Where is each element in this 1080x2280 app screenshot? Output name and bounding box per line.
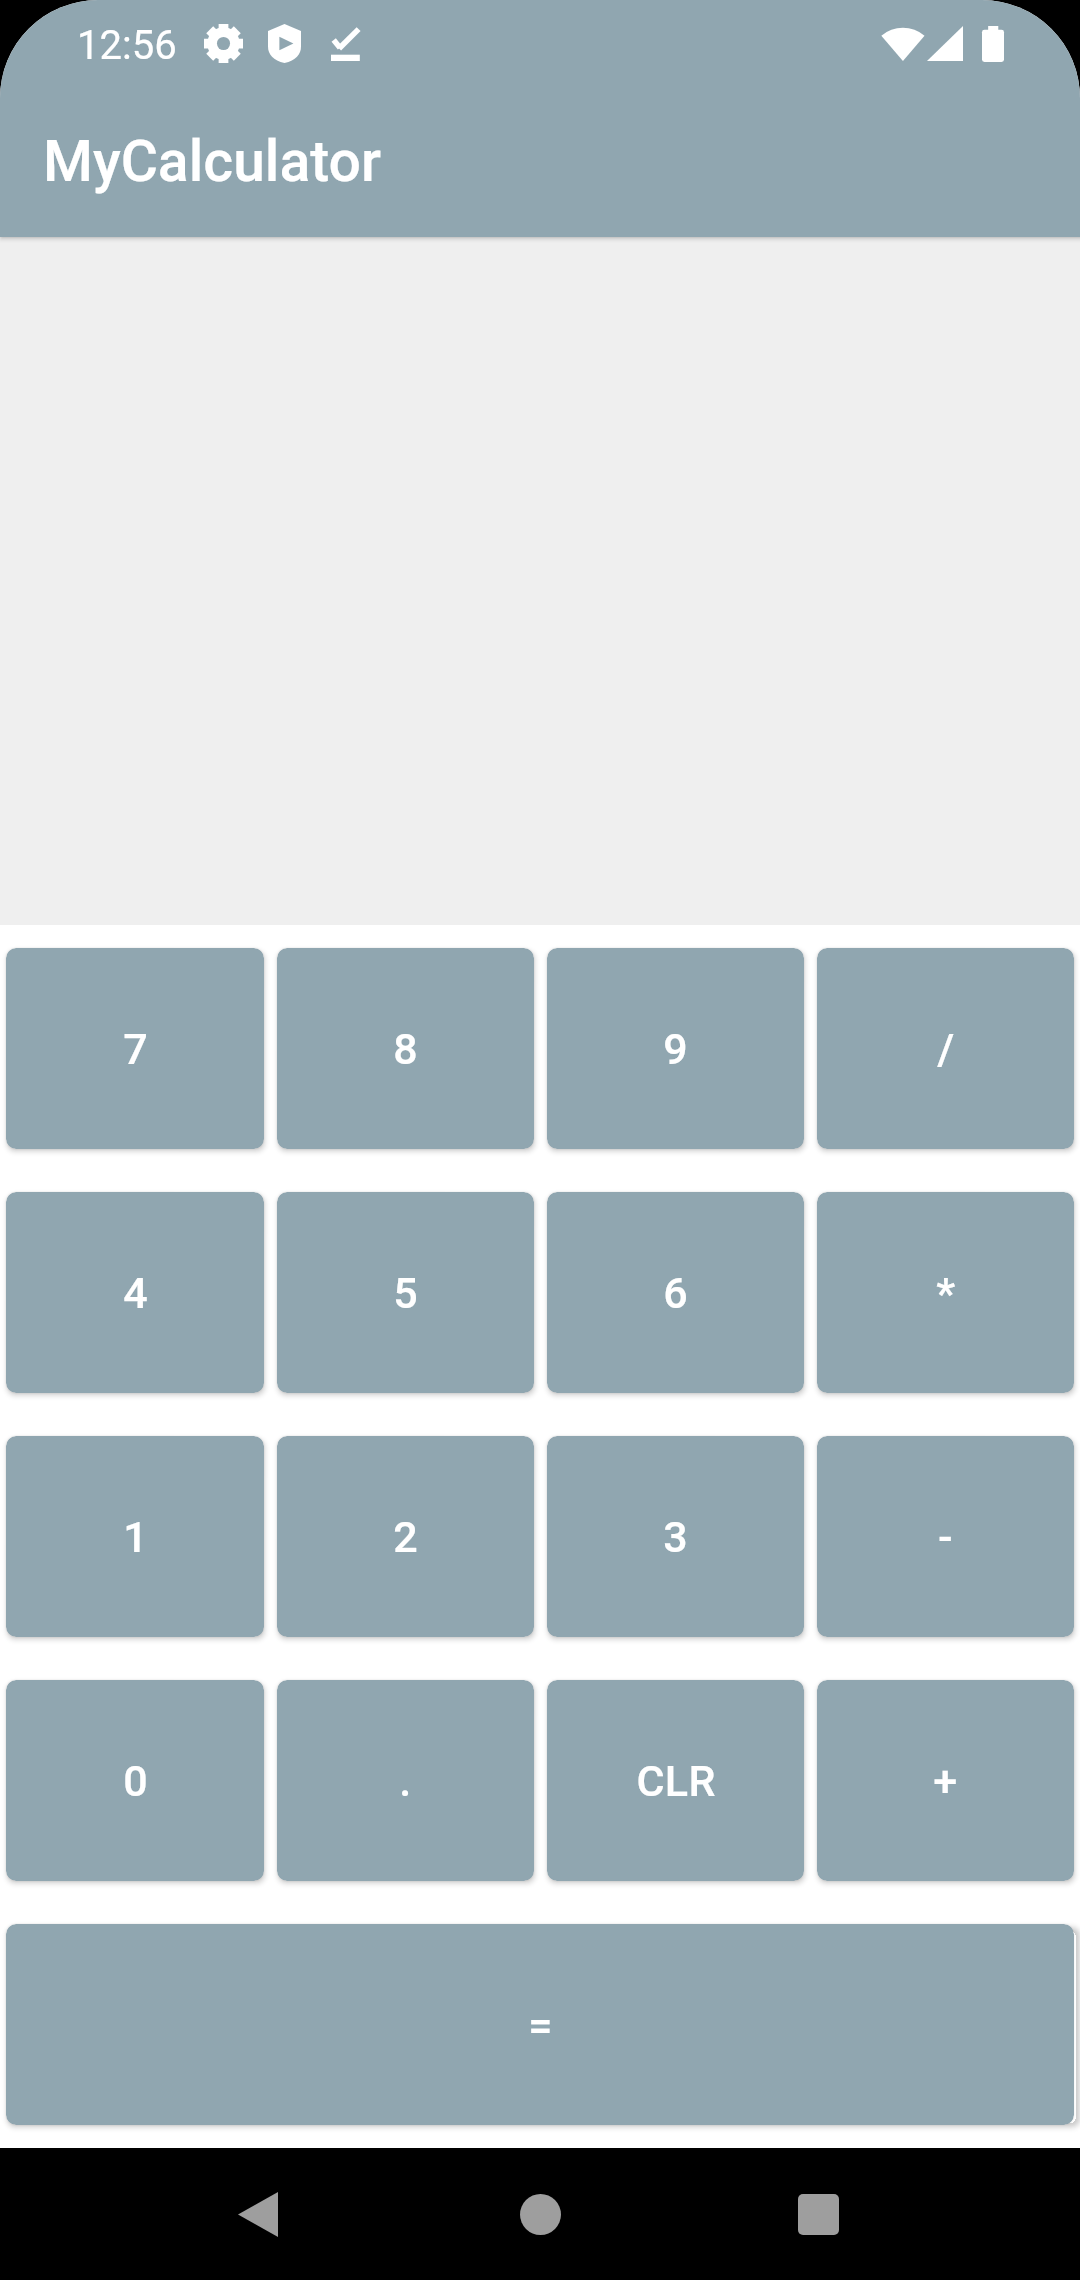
button[interactable]: CLR — [547, 1680, 804, 1881]
staticText: 2 — [393, 1512, 418, 1562]
staticText: MyCalculator — [43, 128, 381, 195]
button[interactable]: 7 — [6, 948, 264, 1149]
staticText: 3 — [663, 1512, 688, 1562]
button[interactable]: + — [817, 1680, 1074, 1881]
button[interactable]: 8 — [277, 948, 534, 1149]
staticText: + — [933, 1756, 958, 1806]
button[interactable]: . — [277, 1680, 534, 1881]
staticText: 5 — [393, 1268, 418, 1318]
button[interactable]: Back — [208, 2164, 308, 2264]
button[interactable]: 2 — [277, 1436, 534, 1637]
button[interactable]: 0 — [6, 1680, 264, 1881]
button[interactable]: 4 — [6, 1192, 264, 1393]
staticText: 4 — [123, 1268, 148, 1318]
button[interactable]: = — [6, 1924, 1074, 2125]
staticText: 6 — [663, 1268, 688, 1318]
staticText: * — [936, 1268, 956, 1318]
button[interactable]: Home — [490, 2164, 590, 2264]
button[interactable]: Recents — [768, 2164, 868, 2264]
staticText: / — [937, 1024, 955, 1074]
button[interactable]: / — [817, 948, 1074, 1149]
staticText: 0 — [123, 1756, 148, 1806]
staticText: = — [528, 2000, 553, 2050]
button[interactable]: 6 — [547, 1192, 804, 1393]
staticText: 7 — [123, 1024, 148, 1074]
button[interactable]: * — [817, 1192, 1074, 1393]
staticText: 8 — [393, 1024, 418, 1074]
staticText: 1 — [123, 1512, 148, 1562]
button[interactable]: 1 — [6, 1436, 264, 1637]
staticText: 9 — [663, 1024, 688, 1074]
staticText: - — [938, 1512, 953, 1562]
staticText: CLR — [636, 1756, 716, 1806]
button[interactable]: 5 — [277, 1192, 534, 1393]
button[interactable]: 3 — [547, 1436, 804, 1637]
button[interactable]: 9 — [547, 948, 804, 1149]
button[interactable]: - — [817, 1436, 1074, 1637]
staticText: . — [399, 1756, 412, 1806]
staticText: 12:56 — [77, 22, 177, 69]
